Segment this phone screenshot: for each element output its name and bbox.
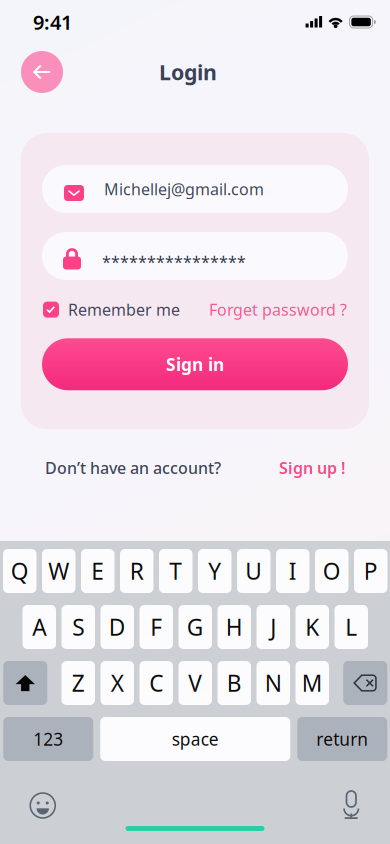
- staticText: D: [109, 612, 126, 642]
- button[interactable]: Dictate: [341, 792, 361, 818]
- button[interactable]: X: [100, 661, 134, 705]
- button[interactable]: Forget password ?: [209, 299, 347, 320]
- staticText: K: [305, 612, 319, 642]
- button[interactable]: L: [334, 605, 368, 649]
- staticText: W: [48, 556, 69, 586]
- button[interactable]: Q: [3, 549, 36, 593]
- button[interactable]: Shift: [3, 661, 47, 705]
- staticText: F: [150, 612, 162, 642]
- staticText: L: [345, 612, 357, 642]
- staticText: Sign up !: [279, 457, 345, 478]
- staticText: A: [32, 612, 46, 642]
- button[interactable]: M: [295, 661, 329, 705]
- button[interactable]: T: [159, 549, 192, 593]
- staticText: S: [72, 612, 84, 642]
- button[interactable]: Michellej@gmail.com: [42, 165, 348, 213]
- staticText: R: [130, 556, 144, 586]
- button[interactable]: Delete: [343, 661, 387, 705]
- button[interactable]: F: [139, 605, 173, 649]
- staticText: N: [265, 668, 282, 698]
- staticText: P: [364, 556, 378, 586]
- staticText: Q: [11, 556, 29, 586]
- button[interactable]: D: [100, 605, 134, 649]
- staticText: Don’t have an account?: [45, 457, 221, 478]
- staticText: H: [226, 612, 243, 642]
- button[interactable]: P: [354, 549, 387, 593]
- button[interactable]: A: [22, 605, 56, 649]
- button[interactable]: Emoji: [29, 792, 56, 819]
- button[interactable]: N: [256, 661, 290, 705]
- button[interactable]: B: [217, 661, 251, 705]
- staticText: Z: [72, 668, 85, 698]
- staticText: ****************: [102, 251, 246, 272]
- staticText: B: [227, 668, 242, 698]
- staticText: I: [289, 556, 297, 586]
- button[interactable]: U: [237, 549, 270, 593]
- button[interactable]: Y: [198, 549, 231, 593]
- staticText: G: [187, 612, 204, 642]
- staticText: Michellej@gmail.com: [104, 178, 264, 200]
- staticText: U: [245, 556, 262, 586]
- button[interactable]: S: [61, 605, 95, 649]
- staticText: T: [169, 556, 182, 586]
- button[interactable]: ****************: [42, 232, 348, 280]
- button[interactable]: J: [256, 605, 290, 649]
- staticText: 123: [33, 727, 63, 750]
- button[interactable]: W: [42, 549, 75, 593]
- staticText: J: [270, 612, 276, 642]
- button[interactable]: Z: [61, 661, 95, 705]
- staticText: Y: [208, 556, 221, 586]
- button[interactable]: Sign in: [42, 338, 348, 390]
- staticText: space: [172, 727, 219, 750]
- button[interactable]: 123: [3, 717, 93, 761]
- button[interactable]: space: [100, 717, 290, 761]
- button[interactable]: E: [81, 549, 114, 593]
- button[interactable]: Back: [21, 51, 63, 93]
- button[interactable]: O: [315, 549, 348, 593]
- staticText: Sign in: [166, 353, 224, 376]
- staticText: O: [323, 556, 341, 586]
- button[interactable]: V: [178, 661, 212, 705]
- button[interactable]: return: [297, 717, 387, 761]
- staticText: V: [188, 668, 202, 698]
- staticText: return: [316, 727, 368, 750]
- staticText: Remember me: [68, 299, 180, 320]
- staticText: Forget password ?: [209, 299, 347, 320]
- staticText: Login: [159, 58, 217, 86]
- button[interactable]: Remember me: [43, 299, 180, 320]
- button[interactable]: Sign up !: [279, 457, 345, 478]
- staticText: C: [149, 668, 163, 698]
- staticText: 9:41: [33, 9, 72, 35]
- button[interactable]: I: [276, 549, 309, 593]
- button[interactable]: G: [178, 605, 212, 649]
- button[interactable]: K: [295, 605, 329, 649]
- staticText: M: [302, 668, 323, 698]
- button[interactable]: R: [120, 549, 153, 593]
- button[interactable]: H: [217, 605, 251, 649]
- staticText: E: [91, 556, 104, 586]
- staticText: X: [111, 668, 124, 698]
- button[interactable]: C: [139, 661, 173, 705]
